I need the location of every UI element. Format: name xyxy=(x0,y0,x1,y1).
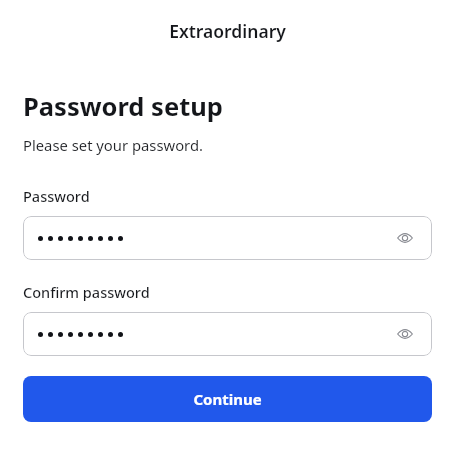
button[interactable]: Show confirm password xyxy=(394,323,416,345)
staticText: Password xyxy=(23,186,90,206)
staticText: Please set your password. xyxy=(23,135,203,155)
staticText: Extraordinary xyxy=(169,19,286,43)
button[interactable]: Show password xyxy=(23,216,432,260)
staticText: Confirm password xyxy=(23,282,150,302)
button[interactable]: Extraordinary xyxy=(0,19,455,43)
button[interactable]: Continue xyxy=(23,376,432,422)
staticText: Password setup xyxy=(23,89,223,124)
button[interactable]: Show confirm password xyxy=(23,312,432,356)
button[interactable]: Show password xyxy=(394,227,416,249)
staticText: Continue xyxy=(193,389,262,409)
